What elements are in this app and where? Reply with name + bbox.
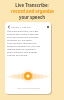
staticText: record and organize — [11, 8, 54, 14]
staticText: Then we walk through the — [7, 41, 37, 44]
button[interactable]: Stop recording — [24, 72, 32, 80]
staticText: First we review the quarterly — [7, 35, 39, 38]
staticText: Tap to stop recording — [17, 87, 40, 90]
staticText: product roadmap for the next — [7, 44, 41, 47]
staticText: numbers for the team. — [7, 38, 33, 41]
button[interactable]: More options — [47, 26, 49, 28]
staticText: about timeline and budget. — [7, 50, 38, 53]
staticText: release and the questions — [7, 47, 36, 50]
staticText: Live Transcribe: — [15, 2, 49, 8]
staticText: your speech — [19, 14, 45, 20]
button[interactable]: Back — [7, 25, 10, 28]
staticText: started with today's agenda. — [7, 32, 39, 35]
staticText: Nov 22, 11:45 AM — [11, 25, 31, 28]
staticText: Welcome everyone, let's get — [7, 29, 39, 32]
staticText: Thanks for joining. — [7, 53, 28, 56]
